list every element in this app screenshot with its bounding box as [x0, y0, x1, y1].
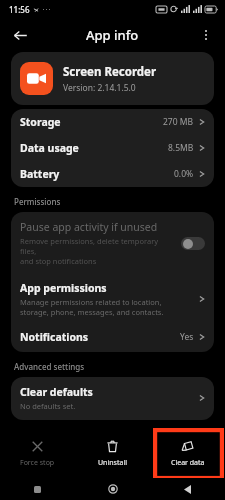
staticText: Manage permissions related to location, [20, 297, 162, 307]
staticText: Force stop [20, 458, 55, 468]
staticText: Remove permissions, delete temporary fil… [20, 236, 175, 256]
staticText: storage, phone, messages, and contacts. [20, 307, 164, 317]
staticText: 11:56 [9, 4, 30, 15]
button[interactable]: Back [150, 478, 225, 500]
staticText: Battery [20, 167, 60, 181]
button[interactable]: Back [6, 21, 34, 49]
button[interactable]: Home [75, 478, 150, 500]
button[interactable]: More options [193, 22, 219, 48]
button[interactable]: Screen Recorder [11, 52, 214, 105]
staticText: 8.5MB [168, 142, 194, 154]
staticText: Version: 2.14.1.5.0 [63, 82, 136, 94]
staticText: Clear data [171, 458, 205, 468]
staticText: Permissions [14, 196, 61, 207]
staticText: Pause app activity if unused [20, 220, 158, 234]
button[interactable]: Pause app activity if unused toggle [181, 237, 205, 250]
button[interactable]: Force stop [0, 431, 75, 476]
button[interactable]: Data usage [11, 135, 214, 161]
staticText: App permissions [20, 281, 107, 295]
staticText: Storage [20, 115, 61, 129]
staticText: Uninstall [98, 458, 127, 468]
staticText: No defaults set. [20, 401, 76, 411]
staticText: Clear defaults [20, 385, 93, 399]
staticText: Data usage [20, 141, 79, 155]
staticText: App info [86, 26, 139, 44]
button[interactable]: Storage [11, 109, 214, 135]
button[interactable]: Pause app activity if unused [11, 212, 214, 274]
button[interactable]: Uninstall [75, 431, 150, 476]
staticText: and stop notifications [20, 256, 97, 266]
staticText: Screen Recorder [63, 64, 157, 80]
staticText: 270 MB [163, 116, 194, 128]
staticText: Yes [180, 331, 194, 343]
button[interactable]: Notifications [11, 324, 214, 350]
button[interactable]: Clear data [150, 431, 225, 476]
button[interactable]: Clear defaults [11, 377, 214, 420]
button[interactable]: App permissions [11, 274, 214, 324]
staticText: Notifications [20, 330, 89, 344]
button[interactable]: Battery [11, 161, 214, 187]
button[interactable]: Recents [0, 478, 75, 500]
staticText: 0.0% [174, 168, 194, 180]
staticText: Advanced settings [14, 361, 85, 372]
